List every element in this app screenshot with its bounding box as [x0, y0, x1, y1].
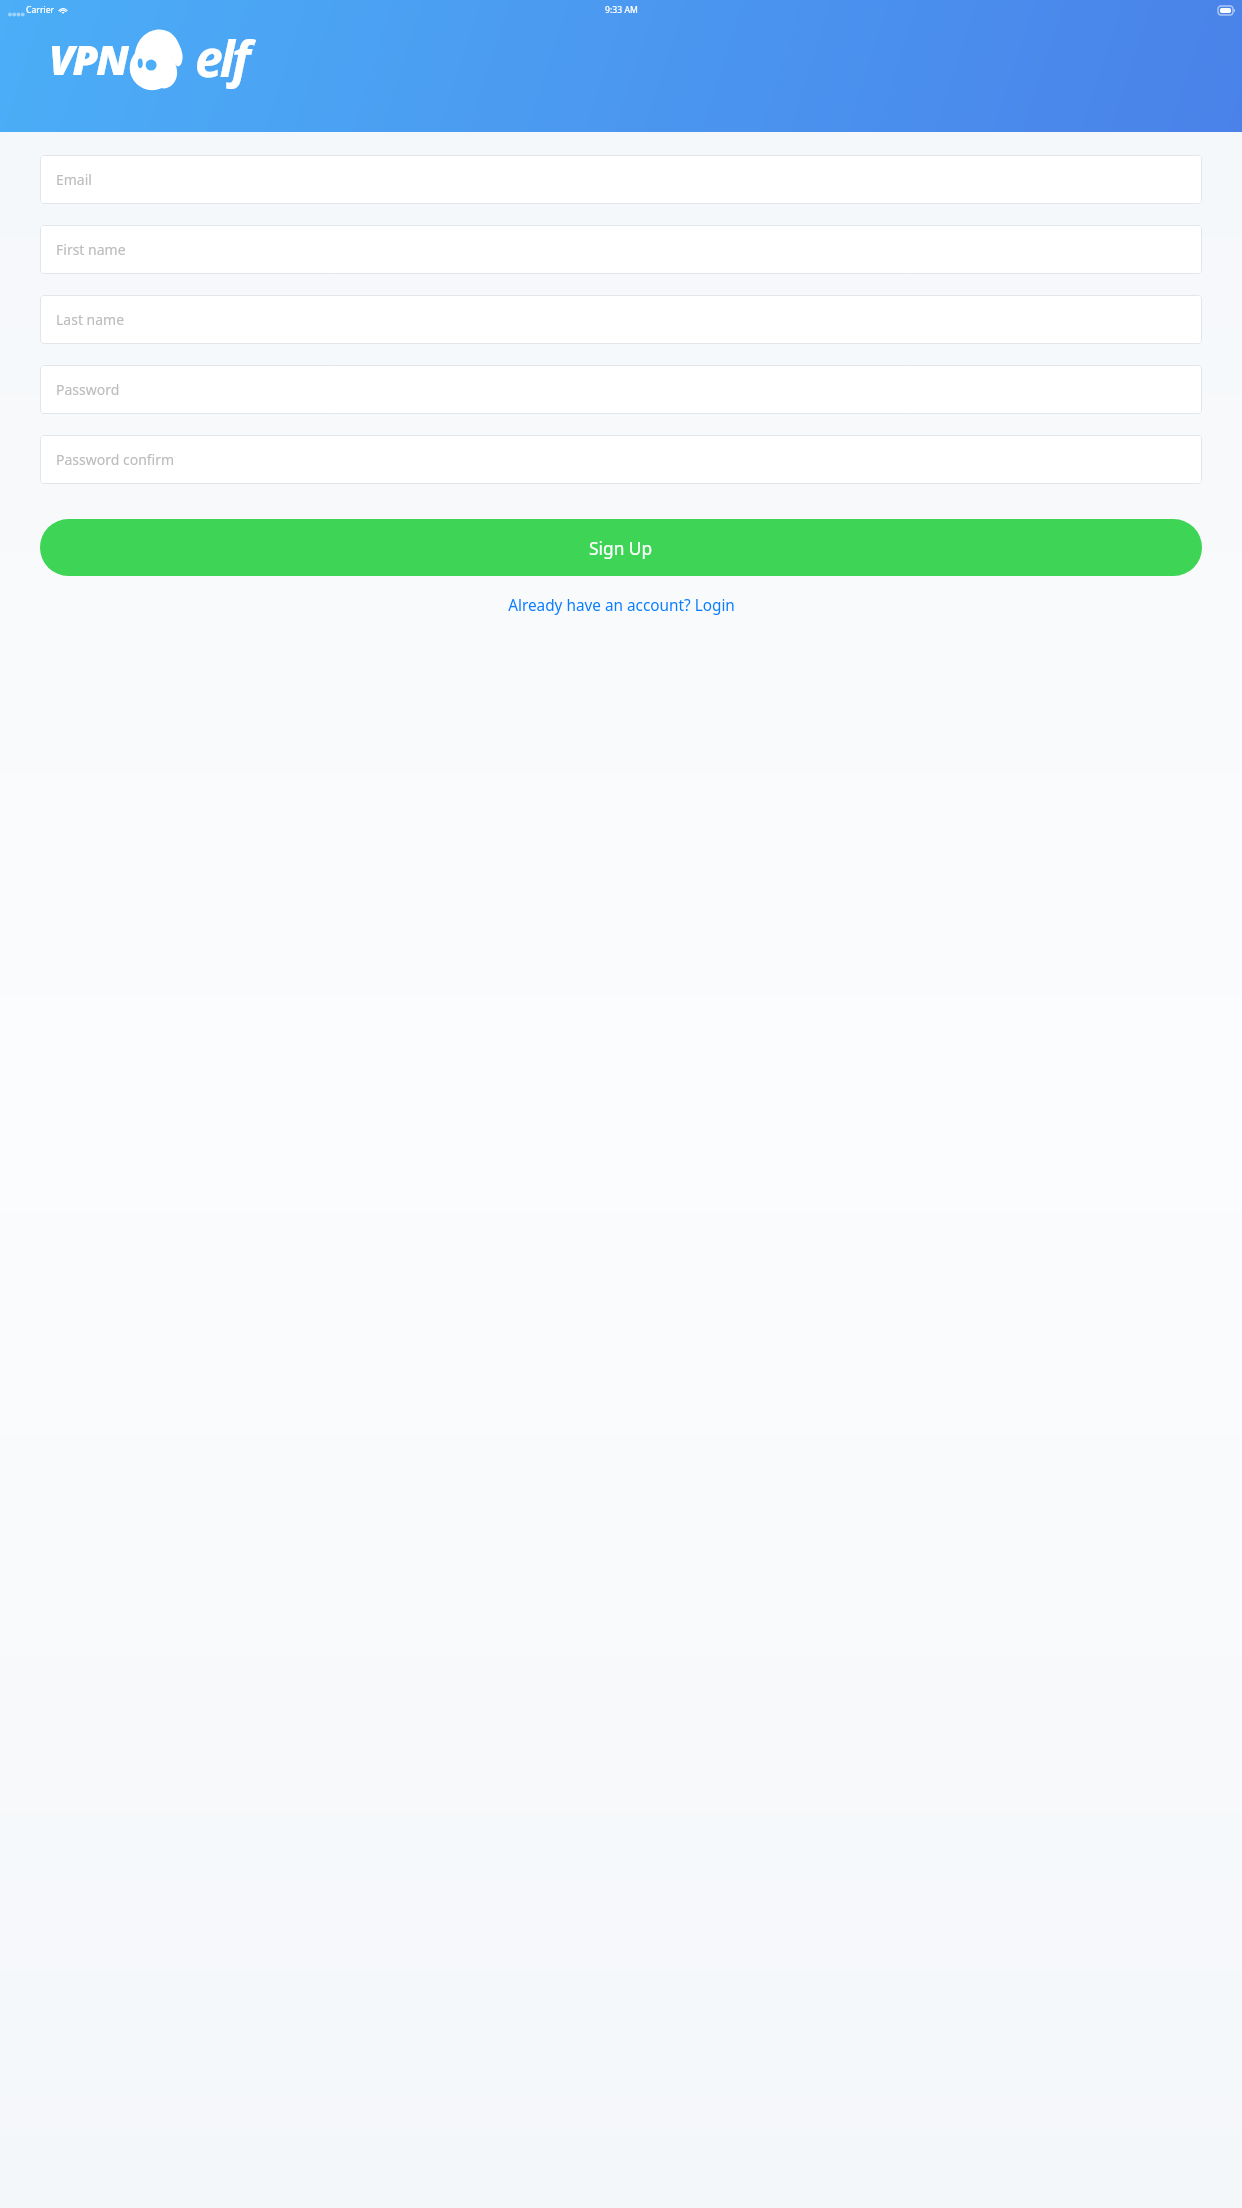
button[interactable]: Last name: [40, 295, 1202, 344]
staticText: Password: [56, 380, 120, 399]
button[interactable]: Password confirm: [40, 435, 1202, 484]
button[interactable]: Sign Up: [40, 519, 1202, 576]
button[interactable]: Password: [40, 365, 1202, 414]
staticText: Password confirm: [56, 450, 175, 469]
button[interactable]: First name: [40, 225, 1202, 274]
staticText: Last name: [56, 310, 125, 329]
staticText: 9:33 AM: [605, 4, 638, 16]
staticText: Already have an account? Login: [508, 595, 735, 616]
staticText: Sign Up: [589, 536, 653, 560]
staticText: Carrier: [26, 4, 55, 16]
staticText: Email: [56, 170, 92, 189]
button[interactable]: Already have an account? Login: [0, 592, 1242, 619]
staticText: elf: [195, 24, 248, 92]
staticText: First name: [56, 240, 126, 259]
button[interactable]: Email: [40, 155, 1202, 204]
staticText: VPN: [49, 31, 127, 87]
